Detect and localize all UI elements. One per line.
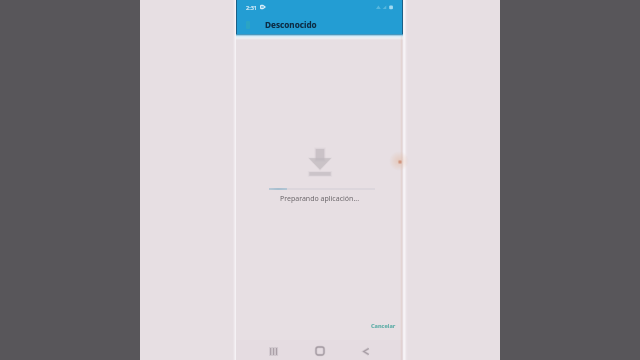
staticText: Desconocido	[265, 19, 317, 30]
staticText: Cancelar	[371, 322, 396, 330]
staticText: Preparando aplicación...	[280, 194, 360, 204]
button[interactable]: Cancelar	[366, 318, 401, 334]
staticText: Desconocido	[265, 19, 317, 30]
staticText: 2:31	[246, 4, 257, 11]
button[interactable]: Back	[350, 340, 382, 360]
button[interactable]: Home	[304, 340, 336, 360]
button[interactable]: Recents	[257, 340, 289, 360]
